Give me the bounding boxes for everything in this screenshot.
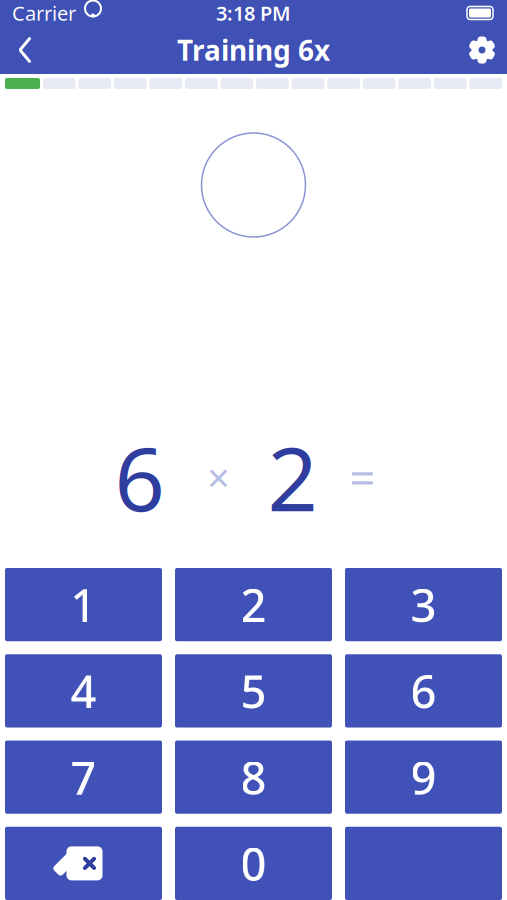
staticText: 5 <box>240 661 266 721</box>
button[interactable]: 6 <box>345 654 502 727</box>
staticText: 6 <box>410 661 436 721</box>
staticText: 4 <box>70 661 96 721</box>
staticText: 7 <box>70 747 96 807</box>
button[interactable]: 1 <box>5 568 162 641</box>
staticText: 3:18 PM <box>216 0 291 26</box>
staticText: 2 <box>267 419 317 535</box>
staticText: Carrier <box>12 0 76 26</box>
button[interactable]: Back <box>0 26 50 74</box>
button[interactable]: 9 <box>345 740 502 814</box>
staticText: = <box>349 447 375 507</box>
staticText: 8 <box>240 747 266 807</box>
staticText: Training 6x <box>177 31 330 69</box>
button[interactable]: 8 <box>175 740 332 814</box>
staticText: 9 <box>410 747 436 807</box>
staticText: 1 <box>70 574 96 635</box>
button[interactable]: 3 <box>345 568 502 641</box>
button[interactable]: 4 <box>5 654 162 727</box>
button[interactable]: Delete <box>5 827 162 900</box>
staticText: 2 <box>240 574 266 635</box>
button[interactable]: 0 <box>175 827 332 900</box>
staticText: × <box>207 450 230 503</box>
staticText: 6 <box>114 419 164 535</box>
staticText: 3 <box>410 574 436 635</box>
button[interactable]: 7 <box>5 740 162 814</box>
button[interactable]: 5 <box>175 654 332 727</box>
staticText: 0 <box>240 833 266 893</box>
button[interactable]: 2 <box>175 568 332 641</box>
button[interactable]: Settings <box>457 26 507 74</box>
